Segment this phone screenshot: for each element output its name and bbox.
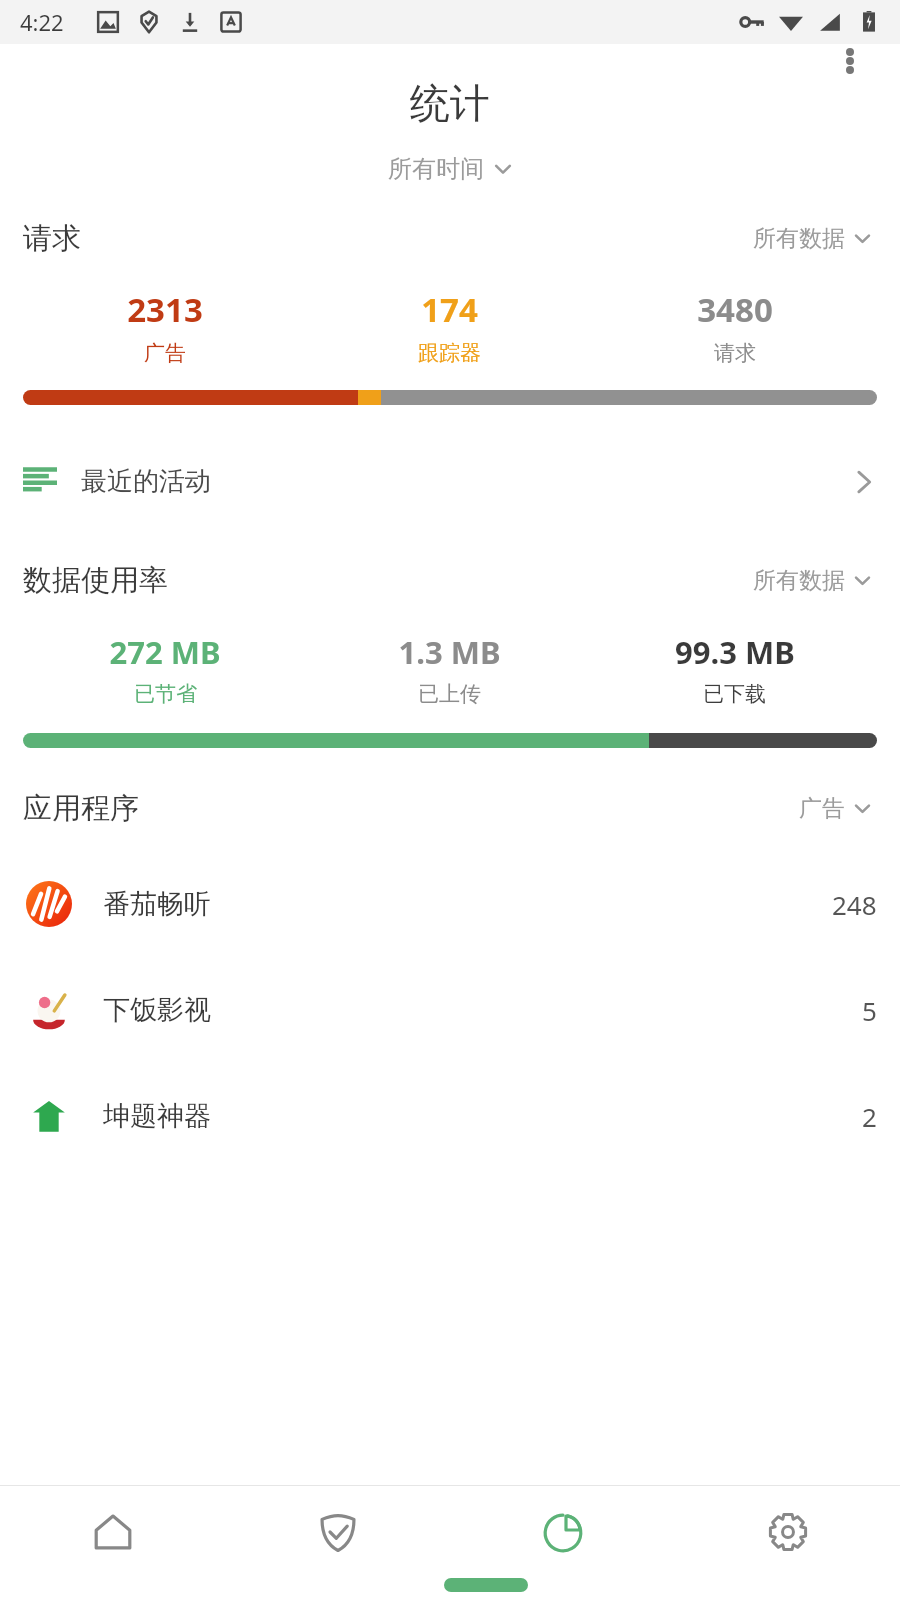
staticText: 所有数据 xyxy=(753,566,845,595)
staticText: 广告 xyxy=(799,794,845,823)
staticText: 所有时间 xyxy=(388,154,484,184)
staticText: 已上传 xyxy=(418,681,481,707)
staticText: 3480 xyxy=(697,287,773,332)
button[interactable]: 番茄畅听 xyxy=(0,851,900,957)
staticText: 应用程序 xyxy=(23,790,139,827)
button[interactable]: 最近的活动 xyxy=(0,455,900,508)
staticText: 4:22 xyxy=(20,7,64,37)
other: More options xyxy=(846,48,854,74)
staticText: 数据使用率 xyxy=(23,562,168,599)
staticText: 所有数据 xyxy=(753,224,845,253)
staticText: 5 xyxy=(862,993,877,1028)
button[interactable]: 所有时间 xyxy=(380,150,520,188)
staticText: 广告 xyxy=(144,340,186,366)
staticText: 请求 xyxy=(23,220,81,257)
staticText: 99.3 MB xyxy=(675,631,795,673)
staticText: 最近的活动 xyxy=(81,465,211,498)
staticText: 下饭影视 xyxy=(103,993,211,1027)
staticText: 174 xyxy=(421,287,478,332)
button[interactable]: 广告 xyxy=(793,790,877,827)
staticText: 番茄畅听 xyxy=(103,887,211,921)
staticText: 跟踪器 xyxy=(418,340,481,366)
staticText: 已下载 xyxy=(703,681,766,707)
button[interactable]: 所有数据 xyxy=(747,562,877,599)
staticText: 坤题神器 xyxy=(103,1099,211,1133)
staticText: 已节省 xyxy=(134,681,197,707)
button[interactable]: Protection xyxy=(225,1486,450,1578)
staticText: 1.3 MB xyxy=(398,631,501,673)
staticText: 统计 xyxy=(410,78,490,128)
button[interactable]: Statistics xyxy=(450,1486,675,1578)
staticText: 272 MB xyxy=(109,631,221,673)
staticText: 请求 xyxy=(714,340,756,366)
staticText: 2313 xyxy=(127,287,203,332)
staticText: 248 xyxy=(832,887,877,922)
button[interactable]: Settings xyxy=(675,1486,900,1578)
button[interactable]: 所有数据 xyxy=(747,220,877,257)
button[interactable]: 下饭影视 xyxy=(0,957,900,1063)
staticText: 2 xyxy=(862,1099,877,1134)
button[interactable]: 坤题神器 xyxy=(0,1063,900,1169)
button[interactable]: Home xyxy=(0,1486,225,1578)
